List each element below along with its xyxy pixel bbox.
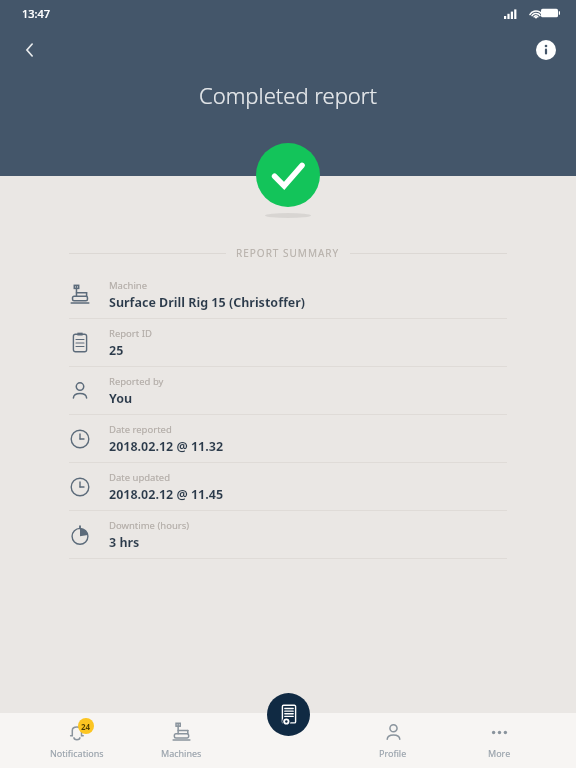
button[interactable]: Machines [129, 713, 234, 768]
staticText: Report ID [109, 327, 152, 340]
staticText: Reported by [109, 375, 164, 388]
button[interactable]: Reported by [69, 367, 507, 414]
staticText: You [109, 390, 133, 407]
staticText: 2018.02.12 @ 11.32 [109, 438, 224, 455]
staticText: Machine [109, 279, 148, 292]
staticText: 2018.02.12 @ 11.45 [109, 486, 224, 503]
staticText: Profile [379, 747, 407, 759]
button[interactable]: Date updated [69, 463, 507, 510]
button[interactable]: Report ID [69, 319, 507, 366]
button[interactable]: More [446, 713, 552, 768]
staticText: Downtime (hours) [109, 519, 190, 532]
staticText: 25 [109, 342, 124, 359]
staticText: More [488, 747, 511, 759]
staticText: Machines [161, 747, 202, 759]
button[interactable]: Profile [340, 713, 446, 768]
staticText: 13:47 [22, 6, 51, 21]
staticText: Surface Drill Rig 15 (Christoffer) [109, 294, 306, 311]
staticText: Date updated [109, 471, 171, 484]
button[interactable]: Date reported [69, 415, 507, 462]
staticText: Date reported [109, 423, 172, 436]
staticText: Notifications [50, 747, 104, 759]
button[interactable]: Info [528, 32, 564, 68]
button[interactable]: New report [267, 693, 310, 736]
staticText: Completed report [199, 80, 377, 110]
button[interactable]: Downtime (hours) [69, 511, 507, 558]
button[interactable]: Machine [69, 271, 507, 318]
staticText: 24 [81, 721, 91, 732]
staticText: REPORT SUMMARY [236, 246, 340, 260]
button[interactable]: 24 [24, 713, 129, 768]
staticText: 3 hrs [109, 534, 140, 551]
button[interactable]: Back [12, 32, 48, 68]
